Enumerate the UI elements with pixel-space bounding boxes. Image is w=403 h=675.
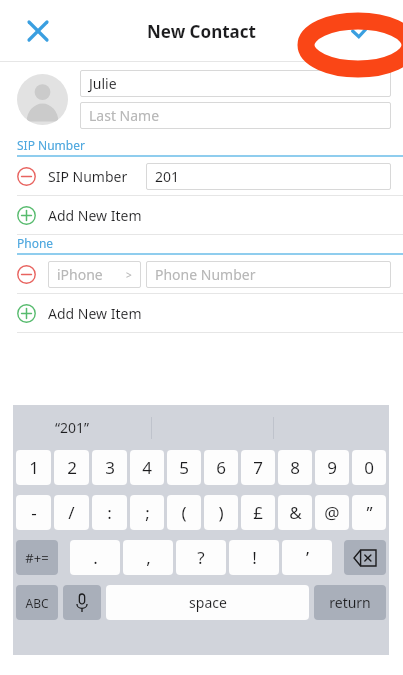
button[interactable]: . bbox=[70, 540, 120, 575]
staticText: - bbox=[31, 501, 37, 524]
button[interactable]: £ bbox=[241, 495, 275, 530]
staticText: Add New Item bbox=[48, 304, 142, 323]
button[interactable]: SIP Number bbox=[17, 157, 391, 195]
staticText: £ bbox=[253, 501, 263, 524]
staticText: 3 bbox=[105, 456, 115, 479]
button[interactable]: : bbox=[92, 495, 127, 530]
staticText: . bbox=[93, 546, 98, 569]
button[interactable]: & bbox=[278, 495, 312, 530]
staticText: ! bbox=[252, 546, 257, 569]
staticText: space bbox=[189, 593, 227, 612]
staticText: ( bbox=[181, 501, 187, 524]
button[interactable]: 9 bbox=[315, 450, 349, 485]
button[interactable]: #+= bbox=[16, 540, 58, 575]
button[interactable]: 1 bbox=[16, 450, 51, 485]
button[interactable]: return bbox=[314, 585, 386, 620]
staticText: 7 bbox=[253, 456, 263, 479]
staticText: @ bbox=[324, 501, 340, 524]
staticText: ABC bbox=[25, 595, 49, 611]
staticText: iPhone bbox=[57, 265, 103, 284]
staticText: 9 bbox=[327, 456, 337, 479]
staticText: Add New Item bbox=[48, 206, 142, 225]
staticText: SIP Number bbox=[17, 137, 85, 153]
staticText: ’ bbox=[306, 546, 309, 569]
button[interactable]: ABC bbox=[16, 585, 58, 620]
staticText: > bbox=[126, 268, 132, 282]
staticText: SIP Number bbox=[48, 167, 128, 186]
button[interactable]: Dictation bbox=[63, 585, 101, 620]
staticText: : bbox=[107, 501, 112, 524]
staticText: ” bbox=[366, 501, 373, 524]
button[interactable]: / bbox=[54, 495, 89, 530]
staticText: Julie bbox=[89, 74, 117, 93]
button[interactable]: Add New Item bbox=[17, 294, 403, 332]
staticText: #+= bbox=[25, 549, 49, 567]
button[interactable]: ” bbox=[352, 495, 386, 530]
staticText: , bbox=[146, 546, 151, 569]
staticText: return bbox=[329, 593, 371, 612]
button[interactable]: ( bbox=[167, 495, 201, 530]
staticText: & bbox=[289, 501, 302, 524]
button[interactable]: iPhone bbox=[17, 255, 391, 293]
button[interactable]: 7 bbox=[241, 450, 275, 485]
button[interactable]: @ bbox=[315, 495, 349, 530]
button[interactable]: 2 bbox=[54, 450, 89, 485]
button[interactable]: ; bbox=[130, 495, 164, 530]
button[interactable]: Done bbox=[341, 11, 381, 51]
staticText: ) bbox=[218, 501, 224, 524]
button[interactable]: ’ bbox=[282, 540, 332, 575]
button[interactable]: Last Name bbox=[80, 102, 391, 129]
staticText: New Contact bbox=[147, 20, 256, 43]
staticText: 0 bbox=[364, 456, 374, 479]
button[interactable]: 6 bbox=[204, 450, 238, 485]
staticText: 1 bbox=[29, 456, 39, 479]
button[interactable]: 3 bbox=[92, 450, 127, 485]
staticText: 2 bbox=[67, 456, 77, 479]
staticText: 201 bbox=[155, 167, 180, 186]
button[interactable]: , bbox=[123, 540, 173, 575]
staticText: Phone bbox=[17, 235, 54, 251]
button[interactable]: space bbox=[106, 585, 309, 620]
button[interactable]: 4 bbox=[130, 450, 164, 485]
staticText: Phone Number bbox=[155, 265, 256, 284]
staticText: Last Name bbox=[89, 106, 160, 125]
button[interactable] bbox=[17, 74, 68, 125]
button[interactable]: Julie bbox=[80, 70, 391, 97]
staticText: ; bbox=[145, 501, 150, 524]
staticText: 5 bbox=[179, 456, 189, 479]
button[interactable]: ! bbox=[229, 540, 279, 575]
staticText: ? bbox=[197, 546, 205, 569]
staticText: “201” bbox=[55, 418, 90, 437]
button[interactable]: 0 bbox=[352, 450, 386, 485]
staticText: 6 bbox=[216, 456, 226, 479]
button[interactable]: Add New Item bbox=[17, 196, 403, 234]
button[interactable]: Backspace bbox=[344, 540, 386, 575]
staticText: 4 bbox=[142, 456, 152, 479]
button[interactable]: ) bbox=[204, 495, 238, 530]
button[interactable]: Close bbox=[18, 11, 58, 51]
staticText: / bbox=[68, 501, 75, 524]
staticText: 8 bbox=[290, 456, 300, 479]
button[interactable]: 5 bbox=[167, 450, 201, 485]
button[interactable]: 8 bbox=[278, 450, 312, 485]
button[interactable]: - bbox=[16, 495, 51, 530]
button[interactable]: ? bbox=[176, 540, 226, 575]
